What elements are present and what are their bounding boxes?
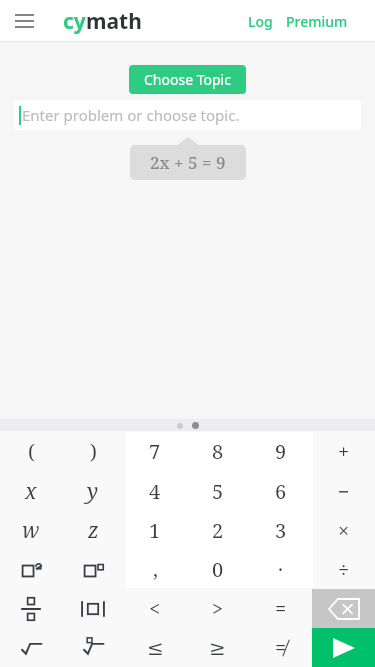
button[interactable]: Enter problem or choose topic.: [14, 100, 361, 130]
button[interactable]: (: [0, 431, 62, 471]
staticText: (: [28, 438, 35, 465]
button[interactable]: =: [249, 589, 312, 628]
button[interactable]: 2x + 5 = 9: [130, 145, 246, 180]
button[interactable]: <: [124, 589, 186, 628]
button[interactable]: ≤: [124, 628, 186, 667]
button[interactable]: ≠: [249, 628, 312, 667]
staticText: cy: [63, 7, 86, 36]
button[interactable]: Square: [0, 550, 62, 589]
button[interactable]: −: [312, 471, 375, 511]
staticText: Enter problem or choose topic.: [22, 105, 240, 125]
button[interactable]: ≥: [186, 628, 249, 667]
staticText: ÷: [338, 556, 350, 583]
button[interactable]: ×: [312, 511, 375, 550]
button[interactable]: [177, 423, 183, 429]
staticText: 4: [149, 478, 161, 505]
staticText: =: [275, 595, 287, 622]
button[interactable]: Log In: [242, 4, 297, 39]
button[interactable]: Square root: [0, 628, 62, 667]
button[interactable]: 3: [249, 511, 312, 550]
staticText: −: [338, 478, 350, 505]
staticText: ≥: [209, 636, 226, 659]
staticText: y: [87, 477, 99, 506]
button[interactable]: w: [0, 511, 62, 550]
button[interactable]: [192, 422, 199, 429]
button[interactable]: Enter: [312, 628, 375, 667]
staticText: Choose Topic: [144, 70, 231, 89]
staticText: w: [22, 516, 40, 545]
button[interactable]: y: [62, 471, 124, 511]
staticText: math: [86, 7, 142, 36]
staticText: ,: [153, 556, 158, 583]
staticText: 2x + 5 = 9: [150, 151, 226, 174]
staticText: ×: [338, 517, 350, 544]
button[interactable]: 2: [186, 511, 249, 550]
staticText: ≤: [147, 636, 164, 659]
staticText: 3: [275, 517, 287, 544]
staticText: Premium: [286, 12, 348, 31]
button[interactable]: 5: [186, 471, 249, 511]
staticText: 0: [212, 556, 224, 583]
button[interactable]: ·: [249, 550, 312, 589]
button[interactable]: ÷: [312, 550, 375, 589]
button[interactable]: Choose Topic: [129, 65, 246, 94]
staticText: 7: [149, 438, 161, 465]
staticText: ): [90, 438, 97, 465]
button[interactable]: Menu: [11, 8, 37, 34]
button[interactable]: x: [0, 471, 62, 511]
button[interactable]: z: [62, 511, 124, 550]
button[interactable]: ,: [124, 550, 186, 589]
button[interactable]: 4: [124, 471, 186, 511]
button[interactable]: Absolute value: [62, 589, 124, 628]
button[interactable]: Backspace: [312, 589, 375, 628]
staticText: x: [25, 477, 37, 506]
staticText: Log In: [248, 12, 291, 31]
staticText: 6: [275, 478, 287, 505]
button[interactable]: 6: [249, 471, 312, 511]
button[interactable]: Premium: [274, 4, 360, 39]
staticText: >: [212, 595, 224, 622]
button[interactable]: Fraction: [0, 589, 62, 628]
staticText: 2: [212, 517, 224, 544]
staticText: ≠: [275, 634, 287, 661]
button[interactable]: 1: [124, 511, 186, 550]
button[interactable]: 8: [186, 431, 249, 471]
staticText: z: [88, 516, 99, 545]
staticText: 9: [275, 438, 287, 465]
button[interactable]: Nth root: [62, 628, 124, 667]
button[interactable]: ): [62, 431, 124, 471]
staticText: 1: [149, 517, 161, 544]
staticText: +: [338, 438, 350, 465]
staticText: 5: [212, 478, 224, 505]
staticText: <: [149, 595, 161, 622]
button[interactable]: 7: [124, 431, 186, 471]
button[interactable]: cy: [63, 7, 142, 36]
button[interactable]: Power: [62, 550, 124, 589]
button[interactable]: +: [312, 431, 375, 471]
staticText: ·: [278, 556, 283, 583]
staticText: 8: [212, 438, 224, 465]
button[interactable]: 9: [249, 431, 312, 471]
button[interactable]: 0: [186, 550, 249, 589]
button[interactable]: >: [186, 589, 249, 628]
